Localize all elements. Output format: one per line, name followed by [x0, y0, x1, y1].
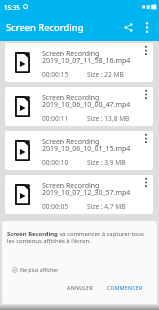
- staticText: 2019_10_07_12_30_57.mp4: [42, 188, 131, 198]
- staticText: Size : 4,7 MB: [87, 202, 126, 211]
- staticText: 2019_10_06_10_00_47.mp4: [42, 100, 131, 110]
- button[interactable]: Share: [118, 17, 138, 37]
- button[interactable]: ANNULER: [62, 280, 98, 295]
- staticText: 00:00:05: [42, 202, 69, 211]
- staticText: Size : 22 MB: [87, 70, 124, 79]
- staticText: 2019_10_06_10_01_15.mp4: [42, 144, 131, 154]
- staticText: 15:35: [4, 3, 20, 11]
- staticText: COMMENCER: [107, 284, 143, 291]
- staticText: ANNULER: [67, 284, 93, 291]
- button[interactable]: Screen Recording: [5, 87, 153, 126]
- staticText: 00:00:10: [42, 158, 69, 167]
- staticText: 2019_10_07_11_58_16.mp4: [42, 56, 131, 66]
- staticText: Screen Recording: [6, 21, 84, 34]
- button[interactable]: More options: [138, 18, 156, 36]
- staticText: Screen Recording: [42, 181, 100, 191]
- staticText: Screen Recording: [42, 137, 100, 147]
- staticText: 00:00:15: [42, 70, 69, 79]
- button[interactable]: Ne plus afficher: [12, 266, 59, 273]
- button[interactable]: More options: [137, 87, 153, 105]
- button[interactable]: COMMENCER: [102, 280, 148, 295]
- staticText: Size : 3,9 MB: [87, 158, 126, 167]
- button[interactable]: Screen Recording: [5, 43, 153, 82]
- button[interactable]: More options: [137, 131, 153, 149]
- button[interactable]: More options: [137, 43, 153, 61]
- button[interactable]: Screen Recording: [5, 131, 153, 170]
- button[interactable]: Screen Recording: [5, 175, 153, 214]
- staticText: Screen Recording: [42, 93, 100, 103]
- staticText: Screen Recording: [42, 49, 100, 59]
- button[interactable]: More options: [137, 175, 153, 193]
- staticText: 00:00:11: [42, 114, 69, 123]
- staticText: Screen Recording va commencer à capturer…: [7, 230, 150, 245]
- staticText: Size : 13,8 MB: [87, 114, 130, 123]
- staticText: Ne plus afficher: [20, 266, 59, 273]
